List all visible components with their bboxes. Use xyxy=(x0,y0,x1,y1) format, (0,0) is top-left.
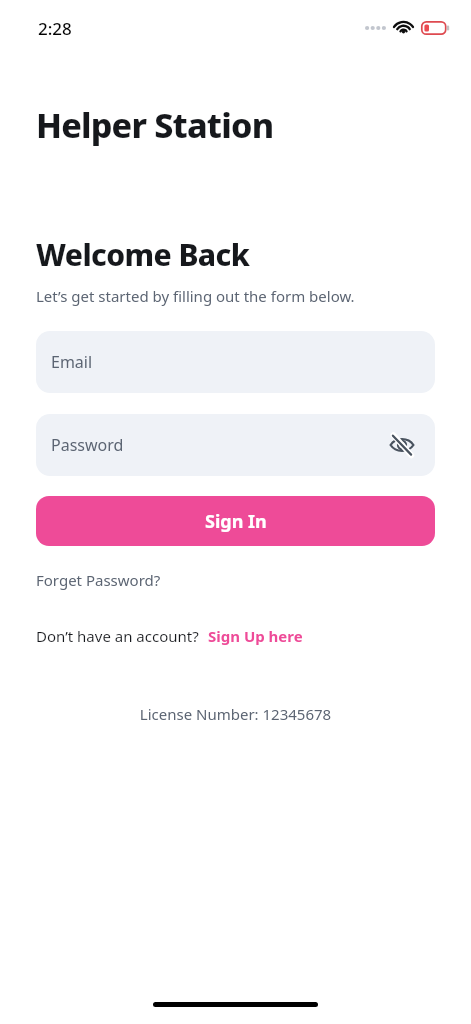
button[interactable]: Password xyxy=(36,414,435,476)
staticText: Sign Up here xyxy=(208,626,303,646)
staticText: Password xyxy=(51,434,124,456)
button[interactable]: Sign In xyxy=(36,496,435,546)
staticText: Helper Station xyxy=(36,102,274,148)
staticText: Welcome Back xyxy=(36,234,250,275)
staticText: Sign In xyxy=(205,509,267,534)
button[interactable]: Sign Up here xyxy=(208,626,303,646)
staticText: Let’s get started by filling out the for… xyxy=(36,286,355,306)
button[interactable]: Forget Password? xyxy=(36,570,161,590)
staticText: Forget Password? xyxy=(36,570,161,590)
staticText: 2:28 xyxy=(38,17,72,40)
button[interactable]: Show password xyxy=(385,428,419,462)
button[interactable]: Email xyxy=(36,331,435,393)
staticText: License Number: 12345678 xyxy=(0,704,471,724)
staticText: Email xyxy=(51,351,93,373)
staticText: Don’t have an account? xyxy=(36,626,199,646)
